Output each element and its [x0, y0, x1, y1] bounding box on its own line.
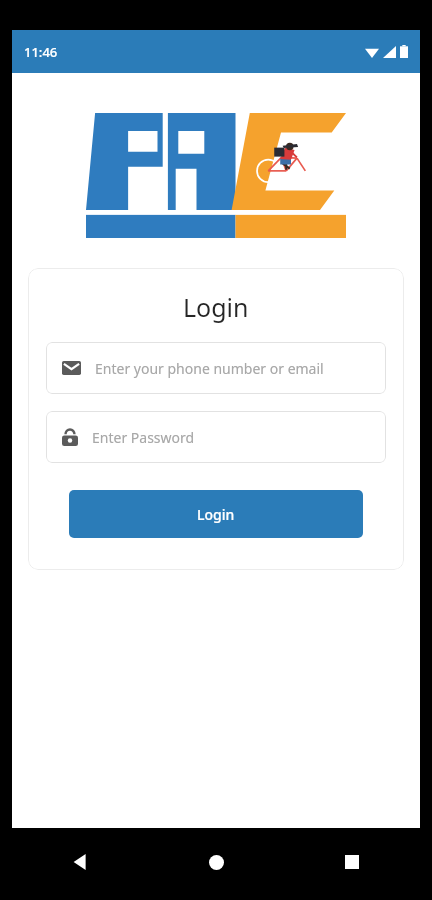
- button[interactable]: Back: [60, 842, 100, 882]
- staticText: Login: [197, 505, 235, 524]
- staticText: Enter your phone number or email: [95, 359, 324, 378]
- other: Email: [62, 361, 81, 375]
- staticText: Enter Password: [92, 428, 195, 447]
- staticText: Login: [183, 290, 249, 324]
- button[interactable]: Password: [46, 411, 386, 463]
- button[interactable]: Email: [46, 342, 386, 394]
- button[interactable]: Recent apps: [332, 842, 372, 882]
- button[interactable]: Home: [196, 842, 236, 882]
- staticText: 11:46: [24, 43, 58, 61]
- other: Password: [62, 428, 78, 446]
- button[interactable]: Login: [69, 490, 363, 538]
